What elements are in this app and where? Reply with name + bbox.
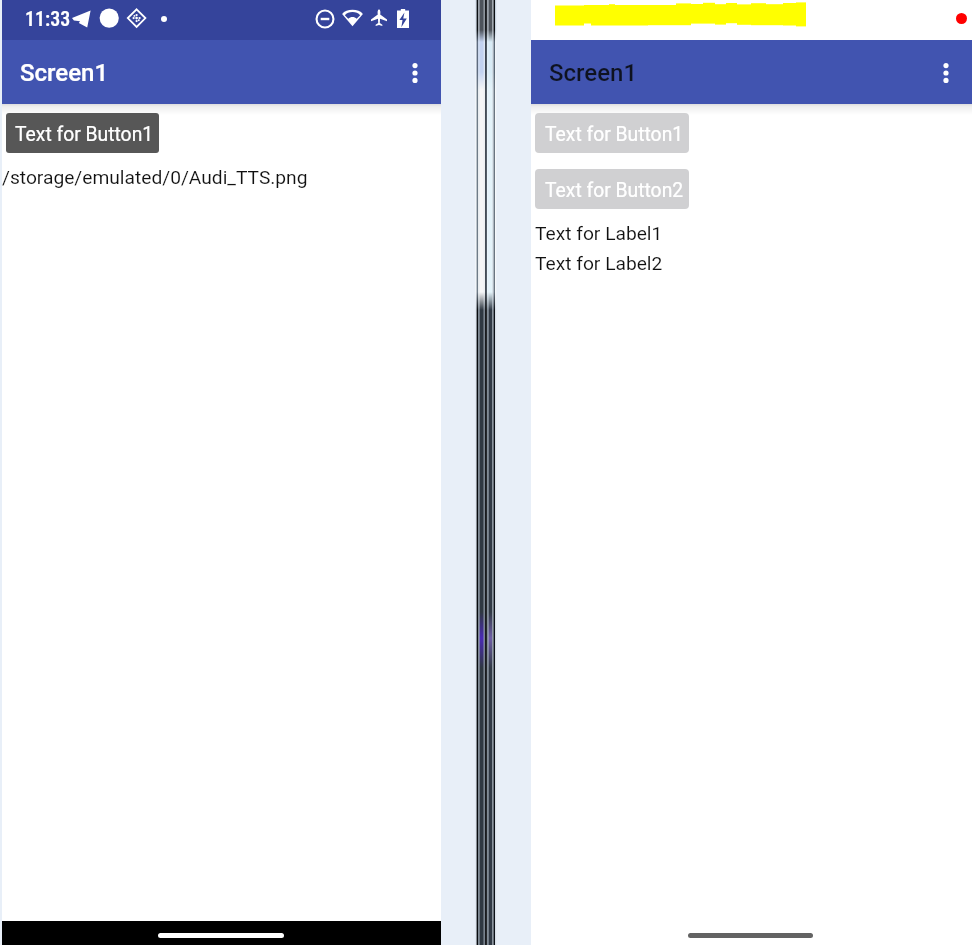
button[interactable]: More options bbox=[928, 55, 964, 91]
staticText: 11:33 bbox=[25, 7, 71, 30]
button[interactable]: Text for Button2 bbox=[535, 169, 689, 209]
staticText: Screen1 bbox=[549, 59, 638, 87]
button[interactable]: Text for Button1 bbox=[535, 113, 689, 153]
staticText: Text for Button1 bbox=[15, 123, 154, 146]
staticText: Text for Button2 bbox=[545, 179, 684, 202]
staticText: /storage/emulated/0/Audi_TTS.png bbox=[2, 166, 308, 189]
staticText: Text for Button1 bbox=[545, 123, 684, 146]
button[interactable]: More options bbox=[397, 55, 433, 91]
button[interactable]: Text for Button1 bbox=[6, 113, 159, 153]
staticText: Text for Label2 bbox=[535, 252, 663, 275]
staticText: Screen1 bbox=[20, 59, 109, 87]
staticText: Text for Label1 bbox=[535, 222, 663, 245]
